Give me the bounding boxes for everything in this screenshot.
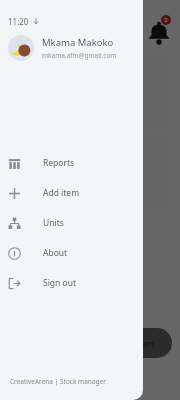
staticText: Units	[43, 217, 64, 229]
button[interactable]: Notifications	[146, 18, 172, 44]
staticText: 11:20	[8, 16, 29, 27]
button[interactable]: Sign out	[0, 268, 143, 298]
button[interactable]: Mkama Makoko	[8, 35, 135, 61]
button[interactable]: Reports	[0, 148, 143, 178]
staticText: CreativeArena | Stock manager	[10, 377, 106, 386]
staticText: About	[43, 247, 68, 259]
staticText: Sign out	[43, 277, 77, 289]
button[interactable]: About	[0, 238, 143, 268]
button[interactable]: Add item	[0, 178, 143, 208]
staticText: Add item	[43, 187, 80, 199]
button[interactable]: Add item	[98, 328, 172, 358]
button[interactable]	[0, 0, 180, 400]
staticText: Reports	[43, 157, 75, 169]
staticText: Mkama Makoko	[42, 36, 114, 49]
button[interactable]: Units	[0, 208, 143, 238]
staticText: Add item	[116, 337, 155, 349]
staticText: mkama.afm@gmail.com	[42, 51, 117, 60]
staticText: 2	[164, 16, 168, 24]
